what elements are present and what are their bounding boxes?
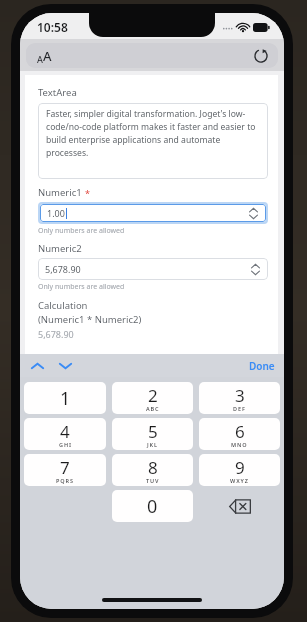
staticText: 0 [147,494,158,519]
staticText: 10:58 [37,19,68,35]
staticText: 1.00 [47,207,65,219]
staticText: Only numbers are allowed [38,226,125,236]
button[interactable]: 1 [24,382,106,414]
button[interactable]: 3 [199,382,280,414]
button[interactable]: 5,678.90 [38,258,268,280]
button[interactable]: Reload page [252,47,270,65]
staticText: WXYZ [230,477,249,484]
button[interactable]: Done [245,357,279,375]
staticText: 8 [148,456,158,479]
staticText: TUV [146,477,160,484]
button[interactable]: Stepper [251,263,260,276]
button[interactable]: Delete [196,488,283,524]
button[interactable]: 4 [24,418,106,450]
staticText: 5 [148,420,158,443]
staticText: Faster, simpler digital transformation. … [46,108,262,159]
staticText: ABC [146,405,160,412]
staticText: Only numbers are allowed [38,282,125,292]
button[interactable]: 6 [199,418,280,450]
button[interactable]: Faster, simpler digital transformation. … [38,103,268,179]
staticText: DEF [233,405,246,412]
button[interactable]: 0 [112,490,193,522]
staticText: Numeric1 [38,186,82,199]
button[interactable]: Text size options [34,44,55,68]
button[interactable]: 2 [112,382,193,414]
button[interactable]: 9 [199,454,280,486]
staticText: Numeric2 [38,242,82,255]
staticText: 7 [60,456,70,479]
staticText: 2 [148,384,158,407]
staticText: A [37,53,43,65]
staticText: MNO [231,441,248,448]
staticText: Calculation [38,299,88,312]
staticText: 5,678.90 [38,328,74,340]
button[interactable]: 5 [112,418,193,450]
button[interactable]: Next field [54,357,76,375]
staticText: TextArea [38,86,77,99]
staticText: PQRS [56,477,74,484]
staticText: * [85,187,90,199]
staticText: A [43,47,52,65]
staticText: (Numeric1 * Numeric2) [38,313,142,326]
staticText: Done [249,359,275,373]
staticText: 6 [235,420,245,443]
button[interactable]: 1.00 [40,204,266,222]
staticText: 3 [235,384,245,407]
button[interactable]: Stepper [249,207,258,220]
staticText: 4 [60,420,70,443]
staticText: 5,678.90 [45,263,81,275]
staticText: GHI [59,441,72,448]
button[interactable]: 7 [24,454,106,486]
staticText: JKL [147,441,158,448]
staticText: 9 [235,456,245,479]
button[interactable]: 8 [112,454,193,486]
staticText: 1 [60,386,71,411]
button[interactable]: Previous field [26,357,48,375]
